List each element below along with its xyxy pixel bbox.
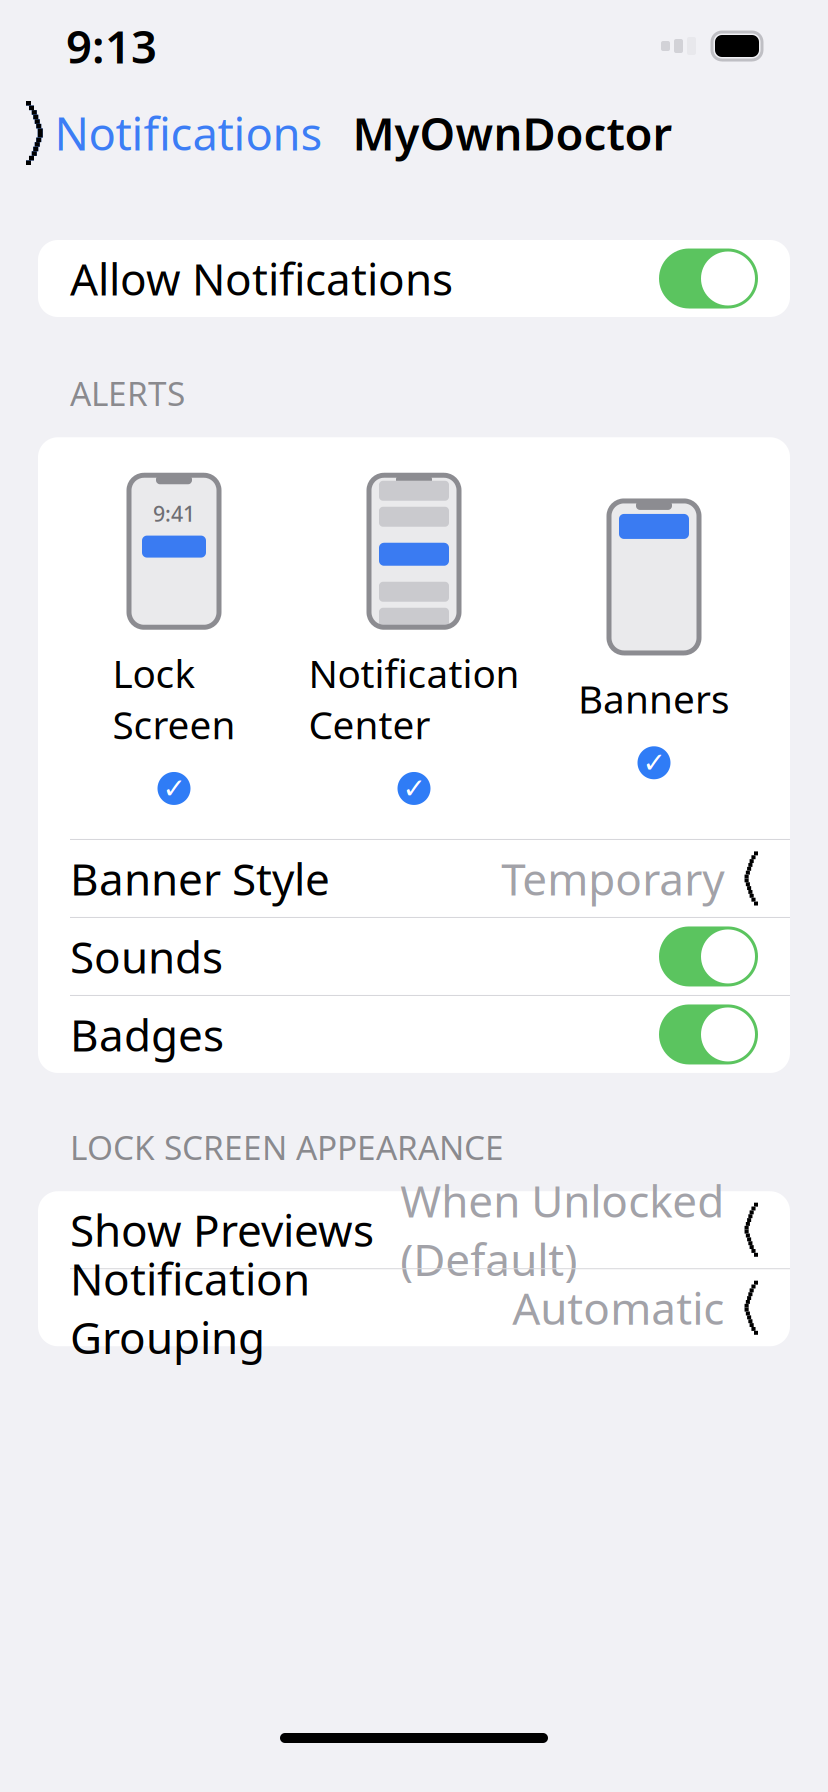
staticText: 9:13 [66, 16, 157, 76]
button[interactable]: Notification Center [279, 475, 549, 805]
button[interactable]: Badges [38, 996, 790, 1073]
staticText: ✓ [402, 773, 425, 804]
staticText: Show Previews [70, 1200, 374, 1259]
button[interactable]: Notification Grouping [38, 1269, 790, 1346]
staticText: Automatic [512, 1278, 724, 1337]
staticText: MyOwnDoctor [353, 103, 673, 163]
button[interactable]: Banners [549, 501, 759, 779]
button[interactable]: Allow Notifications [38, 240, 790, 317]
staticText: When Unlocked (Default) [400, 1171, 724, 1288]
staticText: Allow Notifications [70, 249, 453, 308]
staticText: Temporary [501, 849, 724, 908]
button[interactable]: Show Previews [38, 1191, 790, 1268]
staticText: ✓ [642, 747, 665, 779]
staticText: Sounds [70, 927, 223, 986]
button[interactable]: 9:41 [69, 475, 279, 805]
button[interactable]: Notifications [26, 93, 323, 173]
button[interactable]: Banner Style [38, 840, 790, 917]
staticText: Badges [70, 1005, 224, 1064]
staticText: ALERTS [70, 371, 185, 415]
button[interactable]: Sounds [38, 918, 790, 995]
staticText: Banners [578, 673, 730, 724]
staticText: Notification Center [308, 647, 519, 750]
staticText: 9:41 [153, 499, 195, 528]
staticText: Notifications [55, 103, 323, 163]
staticText: ✓ [162, 773, 185, 804]
staticText: Banner Style [70, 849, 330, 908]
staticText: Notification Grouping [70, 1249, 310, 1366]
staticText: LOCK SCREEN APPEARANCE [70, 1125, 504, 1169]
staticText: Lock Screen [112, 647, 235, 750]
